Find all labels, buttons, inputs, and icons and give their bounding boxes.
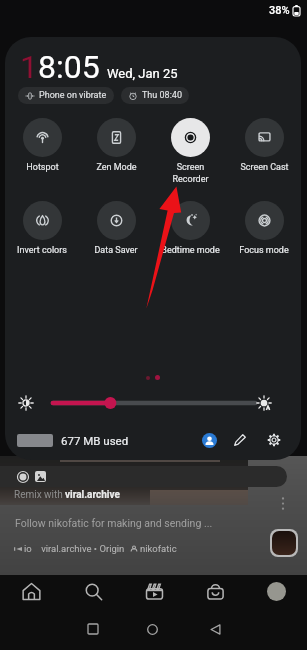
button[interactable]: More options (279, 495, 287, 512)
staticText: 1 (20, 48, 38, 86)
button[interactable]: Phone on vibrate (18, 87, 114, 104)
staticText: Screen Cast (240, 162, 289, 173)
button[interactable]: Shop (185, 575, 246, 608)
button[interactable]: Recents (73, 609, 113, 649)
staticText: Invert colors (17, 245, 67, 256)
staticText: nikofatic (140, 543, 177, 554)
staticText: 8:05 (38, 48, 100, 86)
button[interactable]: Settings (265, 431, 283, 449)
button[interactable]: Home (0, 575, 62, 608)
button[interactable]: Edit (231, 431, 249, 449)
button[interactable]: Account (200, 431, 218, 449)
staticText: 677 MB used (61, 434, 129, 447)
button[interactable]: Screenshot (35, 471, 46, 482)
staticText: Wed, Jan 25 (107, 66, 178, 81)
staticText: Zen Mode (96, 162, 137, 173)
staticText: Data Saver (94, 245, 138, 256)
button[interactable]: Home (132, 609, 172, 649)
staticText: 38% (269, 4, 290, 17)
button[interactable]: Bedtime mode (153, 201, 227, 256)
staticText: viral.archive (65, 489, 120, 501)
staticText: Focus mode (239, 245, 289, 256)
button[interactable]: Screen Recorder (153, 118, 227, 184)
staticText: Screen Recorder (172, 162, 209, 184)
button[interactable]: Search (62, 575, 124, 608)
button[interactable]: Focus mode (227, 201, 301, 256)
staticText: Bedtime mode (161, 245, 220, 256)
button[interactable]: Invert colors (5, 201, 79, 256)
staticText: Follow nikofatic for making and sending … (15, 517, 213, 529)
staticText: Phone on vibrate (39, 90, 107, 101)
button[interactable]: Profile (246, 575, 307, 608)
staticText: Remix with (14, 489, 66, 501)
staticText: Thu 08:40 (142, 90, 182, 101)
staticText: io viral.archive • Origin (24, 543, 125, 554)
button[interactable]: Hotspot (5, 118, 79, 173)
button[interactable]: Thu 08:40 (121, 87, 189, 104)
button[interactable]: Reel thumbnail (272, 531, 296, 555)
button[interactable]: Back (195, 609, 235, 649)
button[interactable]: Screen Cast (227, 118, 301, 173)
button[interactable]: Data Saver (79, 201, 153, 256)
button[interactable]: Zen Mode (79, 118, 153, 173)
button[interactable]: Reels (124, 575, 185, 608)
button[interactable]: Stop recording (16, 470, 30, 484)
staticText: Hotspot (26, 162, 59, 173)
